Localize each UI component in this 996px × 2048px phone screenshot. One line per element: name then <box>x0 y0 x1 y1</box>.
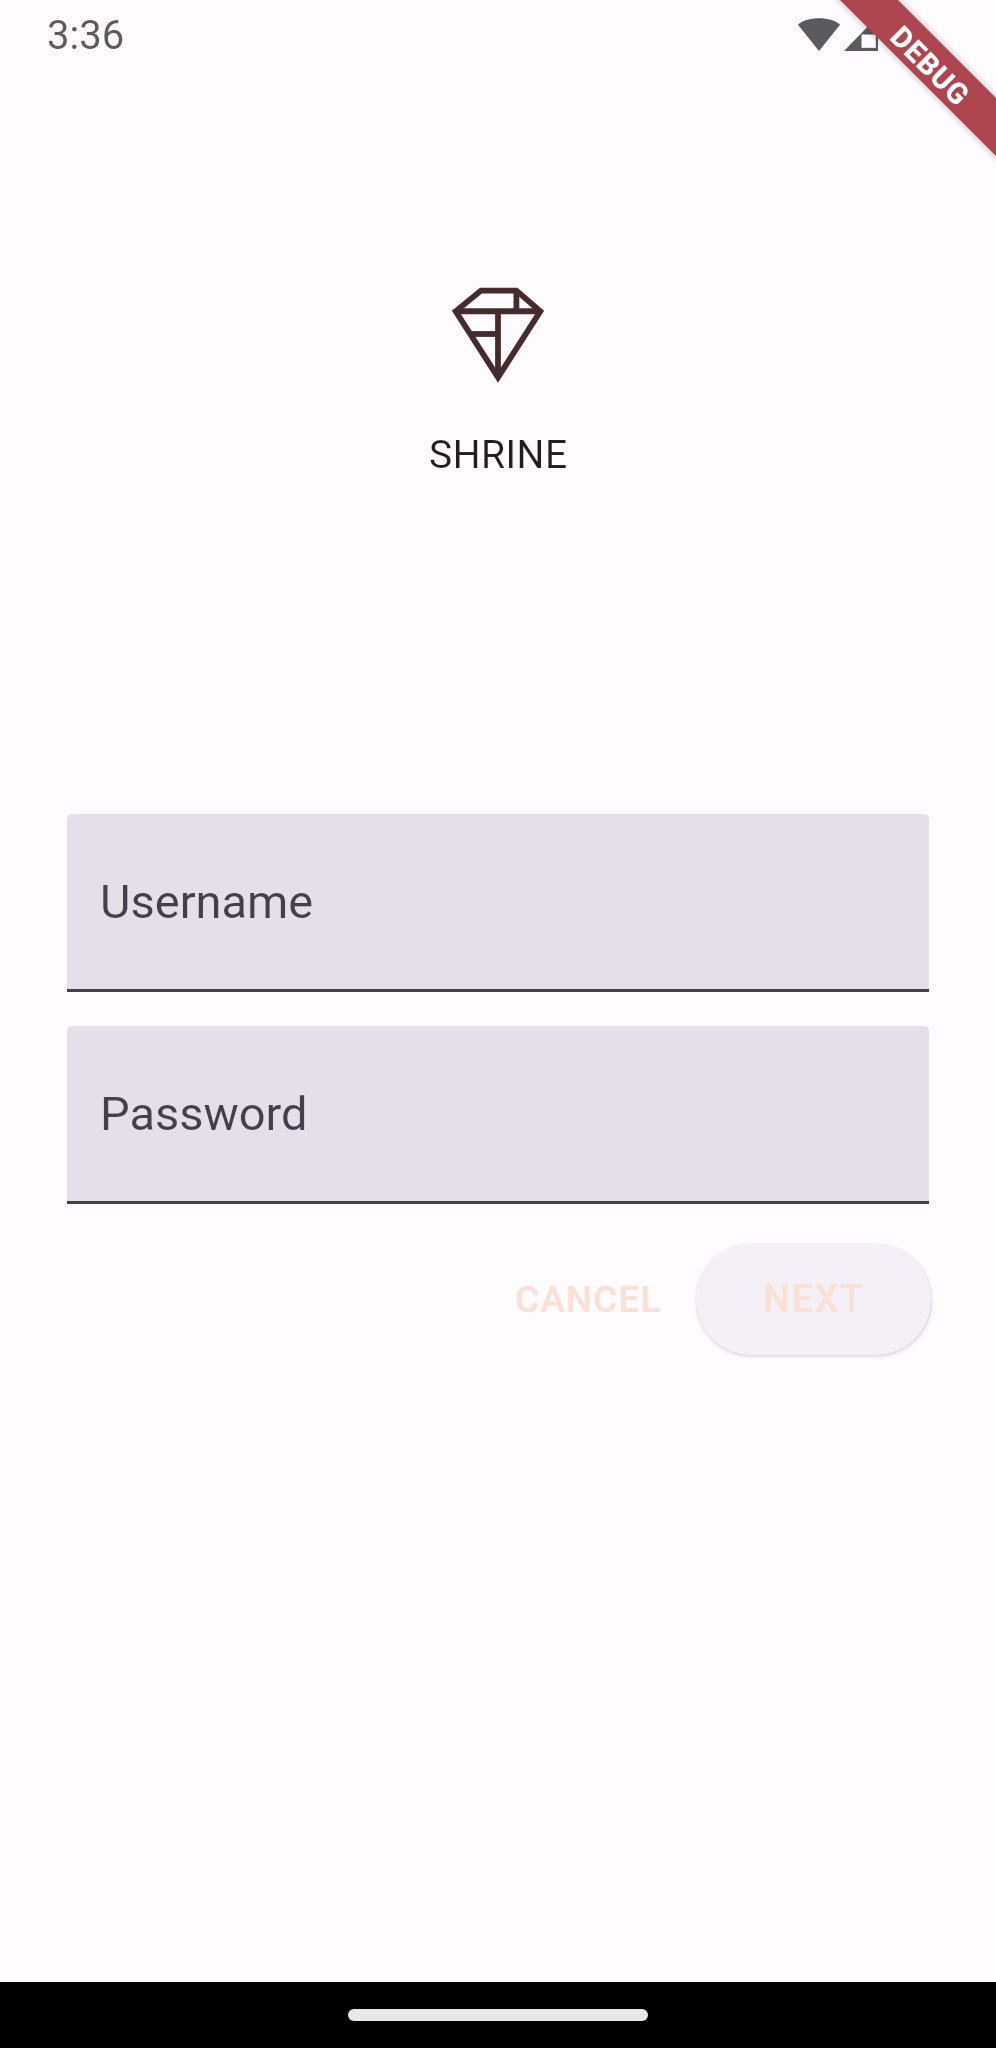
other: Mobile signal <box>844 16 878 51</box>
button[interactable]: Username <box>67 814 929 992</box>
staticText: SHRINE <box>429 432 568 478</box>
button[interactable]: CANCEL <box>481 1244 696 1355</box>
staticText: NEXT <box>763 1277 865 1322</box>
staticText: 3:36 <box>47 12 125 59</box>
button[interactable]: Password <box>67 1026 929 1204</box>
button[interactable]: NEXT <box>696 1244 931 1355</box>
staticText: Username <box>100 874 314 929</box>
staticText: Password <box>100 1086 308 1141</box>
other: Wi-Fi <box>798 16 840 51</box>
staticText: CANCEL <box>515 1278 662 1321</box>
staticText: DEBUG <box>883 19 977 113</box>
